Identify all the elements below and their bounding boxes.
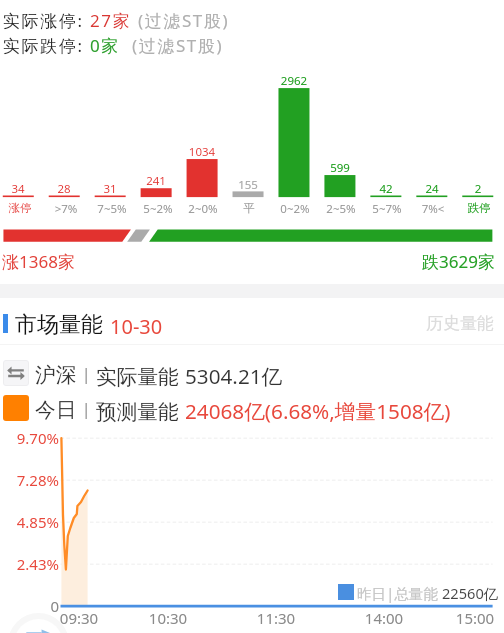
staticText: 7%< <box>410 201 456 217</box>
staticText: 1034 <box>179 144 225 160</box>
staticText: 0家 <box>90 34 120 57</box>
staticText: 28 <box>41 181 87 197</box>
staticText: 14:00 <box>344 608 424 628</box>
staticText: 5304.21亿 <box>185 362 283 388</box>
staticText: 0~2% <box>272 201 318 217</box>
staticText: 历史量能 <box>426 313 494 334</box>
staticText: 4.85% <box>0 512 59 532</box>
staticText: 5~7% <box>364 201 410 217</box>
staticText: 7.28% <box>0 470 59 490</box>
staticText: 实际涨停: <box>3 9 90 32</box>
staticText: 22560亿 <box>442 583 499 603</box>
staticText: 实际量能 <box>96 362 185 388</box>
staticText: 27家 <box>90 9 132 32</box>
staticText: 2962 <box>271 73 317 89</box>
staticText: 涨1368家 <box>2 250 75 273</box>
other: 切换市场 <box>3 360 29 386</box>
button[interactable]: 今日 <box>0 395 504 421</box>
staticText: (过滤ST股) <box>120 34 224 57</box>
staticText: 155 <box>225 177 271 193</box>
staticText: 31 <box>87 181 133 197</box>
staticText: 预测量能 <box>96 397 185 423</box>
staticText: 昨日|总量能 <box>357 583 442 603</box>
staticText: 跌3629家 <box>0 250 495 273</box>
staticText: 42 <box>363 181 409 197</box>
staticText: 24 <box>409 181 455 197</box>
staticText: >7% <box>43 201 89 217</box>
staticText: 2.43% <box>0 554 59 574</box>
staticText: 241 <box>133 173 179 189</box>
staticText: 9.70% <box>0 428 59 448</box>
staticText: 10-30 <box>110 313 163 340</box>
staticText: 平 <box>226 201 272 215</box>
staticText: 市场量能 <box>15 311 103 339</box>
staticText: 7~5% <box>89 201 135 217</box>
staticText: 34 <box>0 181 41 197</box>
staticText: 599 <box>317 160 363 176</box>
staticText: 10:30 <box>128 608 208 628</box>
staticText: 实际跌停: <box>3 34 90 57</box>
button[interactable]: 切换市场 <box>0 360 504 386</box>
staticText: 沪深 <box>35 362 77 388</box>
staticText: 涨停 <box>0 201 43 215</box>
staticText: | <box>77 362 96 385</box>
staticText: 2~5% <box>318 201 364 217</box>
staticText: 24068亿(6.68%,增量1508亿) <box>185 397 451 423</box>
staticText: 跌停 <box>456 201 502 215</box>
staticText: 15:00 <box>435 608 504 628</box>
staticText: 2 <box>455 181 501 197</box>
staticText: 0 <box>0 596 59 616</box>
staticText: 今日 <box>35 397 77 423</box>
button[interactable]: 市场量能 <box>0 301 504 345</box>
staticText: 5~2% <box>135 201 181 217</box>
staticText: | <box>77 397 96 420</box>
staticText: 11:30 <box>236 608 316 628</box>
button[interactable]: 切换图表 <box>8 613 69 633</box>
staticText: (过滤ST股) <box>132 9 230 32</box>
staticText: 09:30 <box>39 608 119 628</box>
staticText: 2~0% <box>180 201 226 217</box>
